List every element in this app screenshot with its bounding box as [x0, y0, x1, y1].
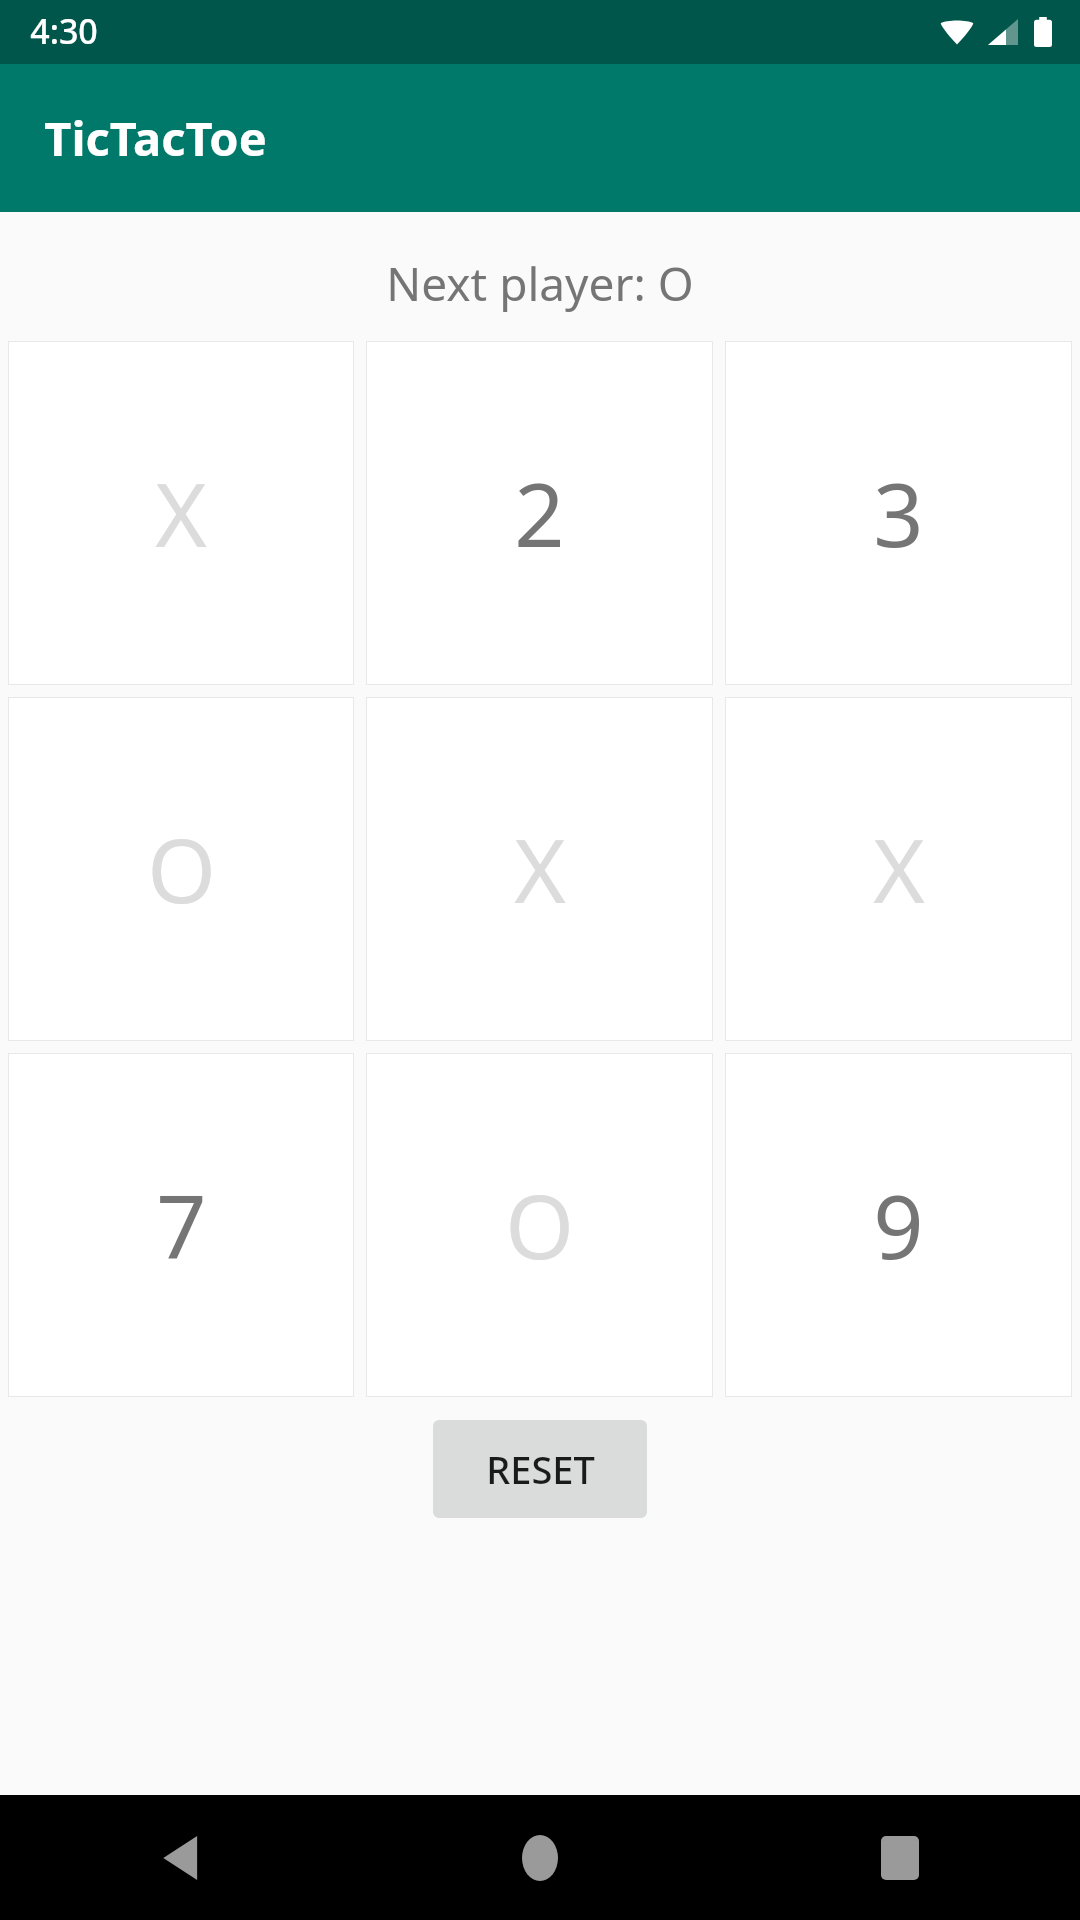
staticText: O [147, 809, 216, 929]
staticText: Next player: O [386, 252, 694, 315]
staticText: X [873, 809, 925, 929]
button[interactable]: 9 [725, 1053, 1072, 1397]
button[interactable]: 7 [8, 1053, 354, 1397]
button[interactable]: X [366, 697, 713, 1041]
button[interactable]: 3 [725, 341, 1072, 685]
button[interactable]: Recent apps [720, 1795, 1080, 1920]
staticText: 3 [873, 453, 924, 573]
button[interactable]: Home [360, 1795, 720, 1920]
button[interactable]: O [8, 697, 354, 1041]
button[interactable]: O [366, 1053, 713, 1397]
staticText: 4:30 [30, 8, 98, 54]
button[interactable]: RESET [433, 1420, 647, 1518]
staticText: TicTacToe [44, 106, 267, 170]
staticText: 2 [514, 453, 565, 573]
staticText: 9 [873, 1165, 924, 1285]
button[interactable]: X [725, 697, 1072, 1041]
button[interactable]: X [8, 341, 354, 685]
staticText: X [514, 809, 566, 929]
button[interactable]: Back [0, 1795, 360, 1920]
staticText: X [155, 453, 207, 573]
staticText: 7 [156, 1165, 207, 1285]
staticText: O [505, 1165, 574, 1285]
button[interactable]: 2 [366, 341, 713, 685]
staticText: RESET [486, 1443, 595, 1495]
